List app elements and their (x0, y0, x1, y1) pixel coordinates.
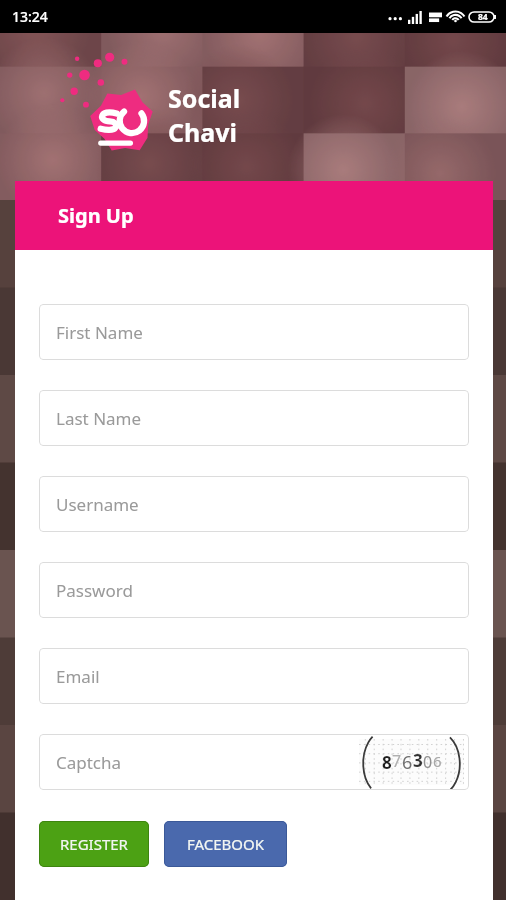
button[interactable]: Last Name (39, 390, 469, 446)
staticText: Sign Up (58, 202, 134, 229)
staticText: 6 (433, 751, 442, 771)
staticText: Chavi (168, 115, 238, 149)
staticText: 8 (382, 751, 392, 774)
staticText: 6 (402, 750, 413, 775)
staticText: 0 (423, 751, 433, 773)
staticText: 13:24 (12, 7, 48, 26)
button[interactable]: Username (39, 476, 469, 532)
staticText: Social (168, 81, 241, 115)
staticText: Last Name (56, 407, 142, 430)
button[interactable]: REGISTER (39, 821, 149, 867)
button[interactable]: FACEBOOK (164, 821, 287, 867)
button[interactable]: Password (39, 562, 469, 618)
staticText: Password (56, 579, 133, 602)
staticText: FACEBOOK (187, 834, 265, 854)
staticText: REGISTER (60, 834, 128, 854)
button[interactable]: Email (39, 648, 469, 704)
staticText: Captcha (56, 751, 122, 774)
staticText: Username (56, 493, 139, 516)
staticText: First Name (56, 321, 143, 344)
button[interactable]: First Name (39, 304, 469, 360)
staticText: 84 (478, 11, 488, 23)
staticText: 7 (392, 750, 402, 772)
staticText: Email (56, 665, 100, 688)
button[interactable]: Captcha (39, 734, 469, 790)
staticText: 3 (413, 749, 423, 772)
